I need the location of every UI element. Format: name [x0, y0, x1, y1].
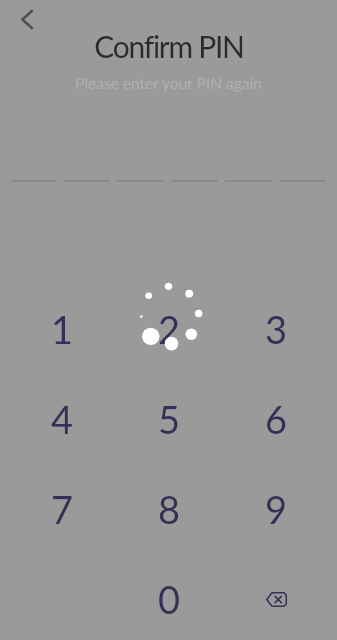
button[interactable]: 9	[223, 464, 330, 554]
button[interactable]: Back	[8, 0, 46, 38]
button[interactable]: 8	[116, 464, 223, 554]
button[interactable]: 4	[9, 374, 116, 464]
button[interactable]: 2	[116, 284, 223, 374]
staticText: 9	[265, 486, 288, 532]
button[interactable]: 3	[223, 284, 330, 374]
staticText: 1	[51, 306, 74, 352]
staticText: Confirm PIN	[94, 28, 244, 64]
staticText: 5	[158, 396, 181, 442]
button[interactable]: 0	[116, 554, 223, 640]
staticText: 3	[265, 306, 288, 352]
button[interactable]: 1	[9, 284, 116, 374]
staticText: 2	[158, 306, 181, 352]
button[interactable]: Backspace	[223, 554, 330, 640]
staticText: 0	[158, 576, 181, 622]
button[interactable]: 6	[223, 374, 330, 464]
staticText: 6	[265, 396, 288, 442]
staticText: 4	[51, 396, 74, 442]
staticText: 7	[51, 486, 74, 532]
staticText: 8	[158, 486, 181, 532]
staticText: Please enter your PIN again	[75, 74, 262, 93]
button[interactable]: 7	[9, 464, 116, 554]
button[interactable]: 5	[116, 374, 223, 464]
